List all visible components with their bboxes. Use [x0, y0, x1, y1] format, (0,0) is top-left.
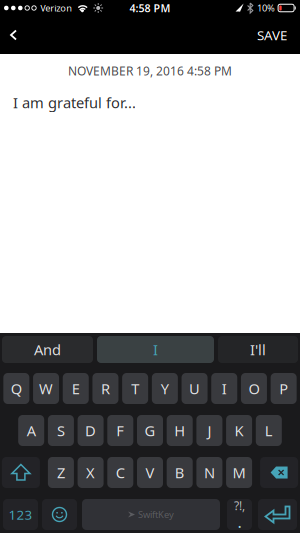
staticText: 4:58 PM [129, 1, 170, 15]
staticText: D [85, 421, 96, 440]
staticText: B [175, 463, 185, 482]
staticText: Z [57, 463, 65, 482]
staticText: O [248, 379, 259, 398]
staticText: I [153, 340, 158, 359]
staticText: NOVEMBER 19, 2016 4:58 PM [68, 63, 232, 79]
staticText: X [86, 463, 95, 482]
staticText: ?!, [234, 498, 245, 513]
staticText: E [72, 379, 80, 398]
staticText: Y [161, 379, 169, 398]
staticText: SAVE [257, 26, 287, 44]
staticText: U [189, 379, 200, 398]
staticText: A [27, 421, 36, 440]
staticText: . [238, 515, 241, 531]
staticText: Q [11, 379, 22, 398]
staticText: I [222, 379, 227, 398]
staticText: 123 [8, 506, 32, 523]
staticText: N [204, 463, 215, 482]
staticText: F [116, 421, 124, 440]
staticText: P [279, 379, 288, 398]
staticText: T [131, 379, 139, 398]
staticText: 10% [257, 2, 275, 14]
staticText: H [174, 421, 185, 440]
staticText: Verizon [40, 2, 72, 14]
staticText: And [34, 340, 61, 359]
staticText: I am grateful for... [13, 93, 136, 112]
staticText: R [101, 379, 110, 398]
staticText: K [235, 421, 244, 440]
staticText: C [116, 463, 125, 482]
staticText: I'll [250, 340, 266, 359]
staticText: L [265, 421, 273, 440]
staticText: SwiftKey [138, 508, 174, 521]
staticText: G [144, 421, 155, 440]
staticText: J [207, 421, 211, 440]
staticText: S [57, 421, 65, 440]
staticText: V [145, 463, 154, 482]
staticText: M [233, 463, 246, 482]
staticText: W [39, 379, 53, 398]
